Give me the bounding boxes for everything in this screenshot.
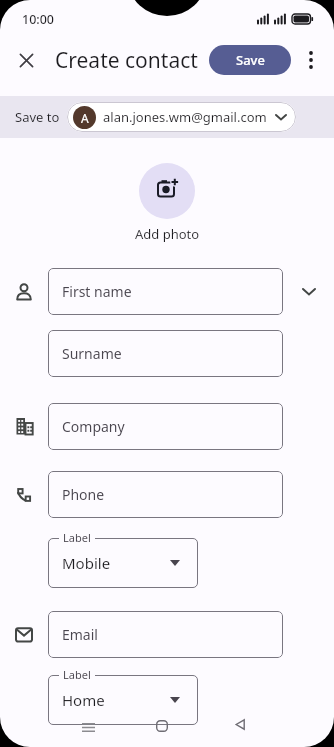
staticText: Surname: [62, 344, 122, 363]
staticText: Phone: [62, 485, 105, 504]
staticText: alan.jones.wm@gmail.com: [103, 108, 267, 126]
staticText: Save: [236, 51, 265, 69]
button[interactable]: [139, 163, 195, 219]
button[interactable]: [283, 268, 334, 315]
staticText: 10:00: [22, 11, 55, 28]
button[interactable]: Surname: [48, 330, 283, 377]
button[interactable]: [150, 714, 174, 738]
staticText: First name: [62, 282, 132, 301]
button[interactable]: Home: [48, 675, 198, 725]
staticText: Create contact: [55, 46, 198, 75]
button[interactable]: [228, 712, 252, 736]
staticText: Save to: [15, 108, 60, 126]
staticText: Home: [62, 690, 105, 710]
button[interactable]: Email: [48, 611, 283, 658]
button[interactable]: Save: [209, 45, 291, 75]
button[interactable]: [76, 715, 100, 739]
button[interactable]: Phone: [48, 471, 283, 518]
button[interactable]: [298, 47, 324, 73]
staticText: Add photo: [135, 225, 200, 243]
staticText: Label: [63, 667, 91, 682]
staticText: A: [81, 110, 89, 126]
staticText: Mobile: [62, 553, 111, 573]
staticText: Label: [63, 530, 91, 545]
staticText: Company: [62, 417, 125, 436]
button[interactable]: Company: [48, 403, 283, 450]
staticText: Email: [62, 625, 98, 644]
button[interactable]: [12, 46, 40, 74]
button[interactable]: Mobile: [48, 538, 198, 588]
button[interactable]: First name: [48, 268, 283, 315]
button[interactable]: A: [67, 102, 296, 132]
